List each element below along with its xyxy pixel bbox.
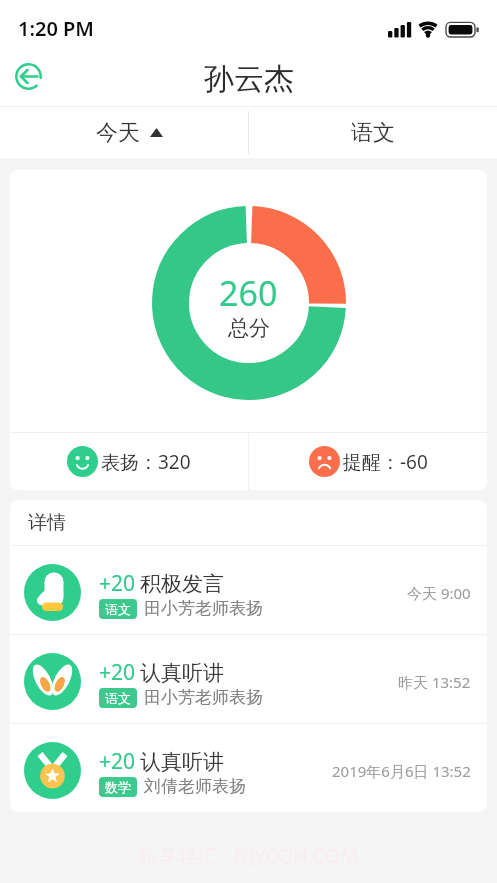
staticText: 孙云杰 [204, 60, 294, 98]
staticText: 详情 [28, 511, 66, 535]
staticText: 语文 [351, 119, 395, 147]
button[interactable]: +20 [10, 724, 487, 812]
staticText: 刘倩老师表扬 [144, 776, 246, 797]
staticText: 2019年6月6日 13:52 [332, 761, 471, 781]
staticText: 积极发言 [140, 571, 224, 597]
staticText: 田小芳老师表扬 [144, 687, 263, 708]
button[interactable]: 提醒：-60 [249, 433, 487, 490]
staticText: 今天 [96, 119, 140, 147]
button[interactable]: 表扬：320 [10, 433, 248, 490]
button[interactable] [13, 61, 43, 91]
staticText: 数学 [105, 779, 131, 795]
staticText: 提醒：-60 [343, 449, 428, 475]
staticText: 今天 9:00 [407, 583, 471, 603]
staticText: +20 [99, 658, 136, 687]
staticText: 认真听讲 [140, 660, 224, 686]
button[interactable]: +20 [10, 635, 487, 723]
staticText: 表扬：320 [101, 449, 191, 475]
staticText: 昨天 13:52 [398, 672, 471, 692]
button[interactable]: 今天 [0, 107, 248, 158]
staticText: 260 [219, 270, 278, 316]
staticText: +20 [99, 569, 136, 598]
button[interactable]: +20 [10, 546, 487, 634]
staticText: 认真听讲 [140, 749, 224, 775]
staticText: 总分 [228, 315, 270, 341]
staticText: 田小芳老师表扬 [144, 598, 263, 619]
button[interactable]: 语文 [248, 107, 497, 158]
staticText: 1:20 PM [18, 15, 94, 42]
staticText: +20 [99, 747, 136, 776]
staticText: 语文 [105, 690, 131, 706]
staticText: 语文 [105, 601, 131, 617]
